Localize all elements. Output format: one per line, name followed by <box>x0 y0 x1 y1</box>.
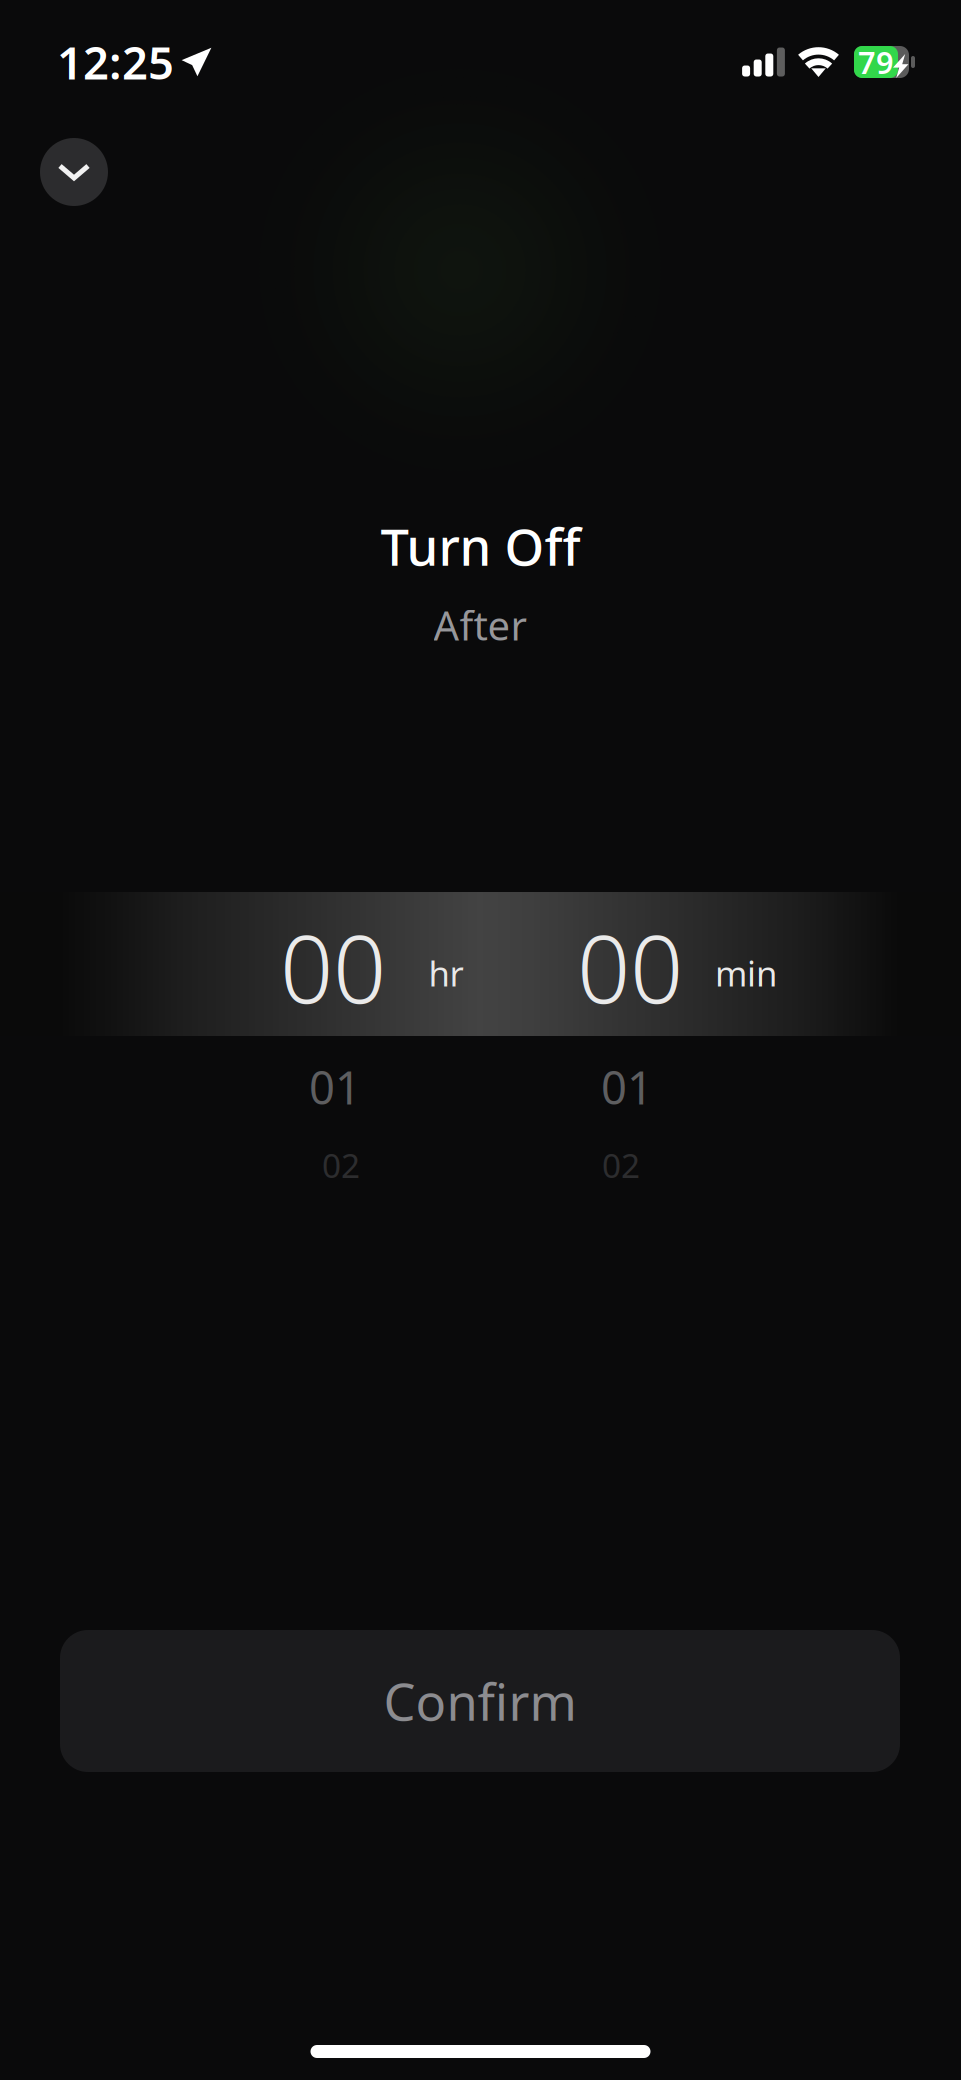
staticText: 01 <box>601 1057 653 1117</box>
staticText: 02 <box>322 1143 360 1187</box>
staticText: 01 <box>309 1057 361 1117</box>
button[interactable]: Close <box>40 138 108 206</box>
staticText: After <box>433 598 527 651</box>
staticText: Confirm <box>383 1667 576 1735</box>
button[interactable]: Confirm <box>60 1630 900 1772</box>
staticText: min <box>715 950 777 996</box>
staticText: 00 <box>280 905 386 1029</box>
staticText: 12:25 <box>57 32 174 92</box>
staticText: 02 <box>602 1143 640 1187</box>
staticText: 00 <box>577 905 683 1029</box>
staticText: Turn Off <box>380 512 580 580</box>
staticText: hr <box>428 950 463 996</box>
staticText: 79 <box>858 42 894 82</box>
